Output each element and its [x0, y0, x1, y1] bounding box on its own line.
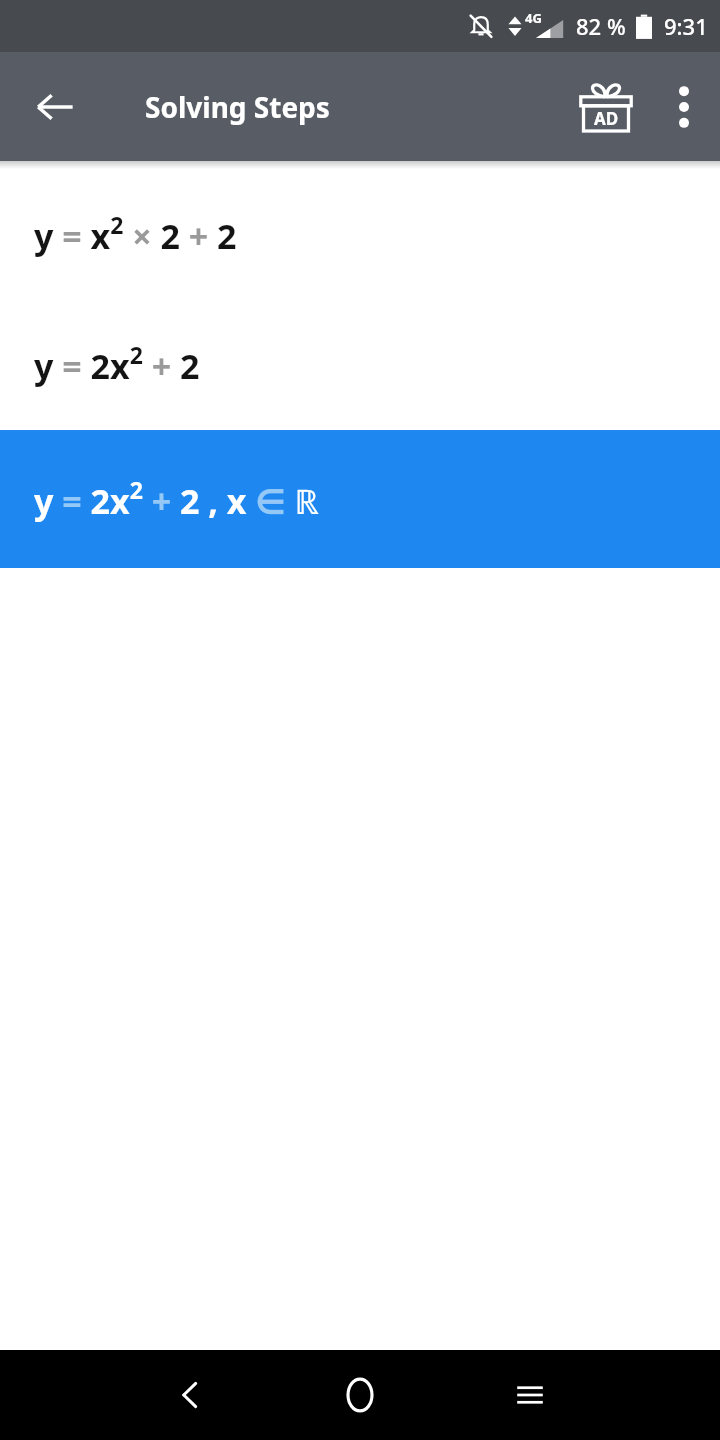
staticText: y = 2x2 + 2 — [34, 339, 200, 389]
staticText: 9:31 — [664, 11, 708, 41]
button[interactable]: Watch ad for reward — [564, 65, 648, 149]
button[interactable]: y = 2x2 + 2 , x ∈ ℝ — [0, 430, 720, 568]
staticText: y = 2x2 + 2 , x ∈ ℝ — [34, 474, 319, 524]
button[interactable]: More options — [648, 71, 720, 143]
staticText: 82 % — [576, 11, 626, 41]
button[interactable]: y = 2x2 + 2 — [0, 298, 720, 430]
button[interactable]: Recent apps — [470, 1350, 590, 1440]
button[interactable]: Back — [130, 1350, 250, 1440]
staticText: Solving Steps — [145, 88, 330, 126]
staticText: 4G — [525, 9, 542, 27]
button[interactable]: Back — [14, 66, 96, 148]
button[interactable]: Home — [300, 1350, 420, 1440]
button[interactable]: y = x2 × 2 + 2 — [0, 169, 720, 298]
staticText: y = x2 × 2 + 2 — [34, 209, 237, 259]
staticText: AD — [594, 107, 619, 130]
